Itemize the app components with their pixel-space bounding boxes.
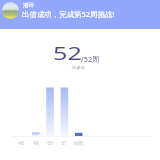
staticText: /52周 (81, 54, 100, 64)
staticText: 本周 (70, 140, 86, 146)
staticText: 52 (53, 40, 82, 65)
staticText: 50 (42, 140, 58, 147)
staticText: 潘玲 (23, 2, 35, 9)
staticText: 出借成功，完成第52周挑战! (22, 9, 115, 19)
staticText: 已参与 (72, 65, 85, 70)
staticText: 51 (56, 140, 72, 147)
button[interactable]: User avatar (0, 0, 160, 29)
other: User avatar (2, 2, 19, 19)
staticText: 49 (28, 140, 44, 147)
staticText: 48 (13, 140, 29, 147)
